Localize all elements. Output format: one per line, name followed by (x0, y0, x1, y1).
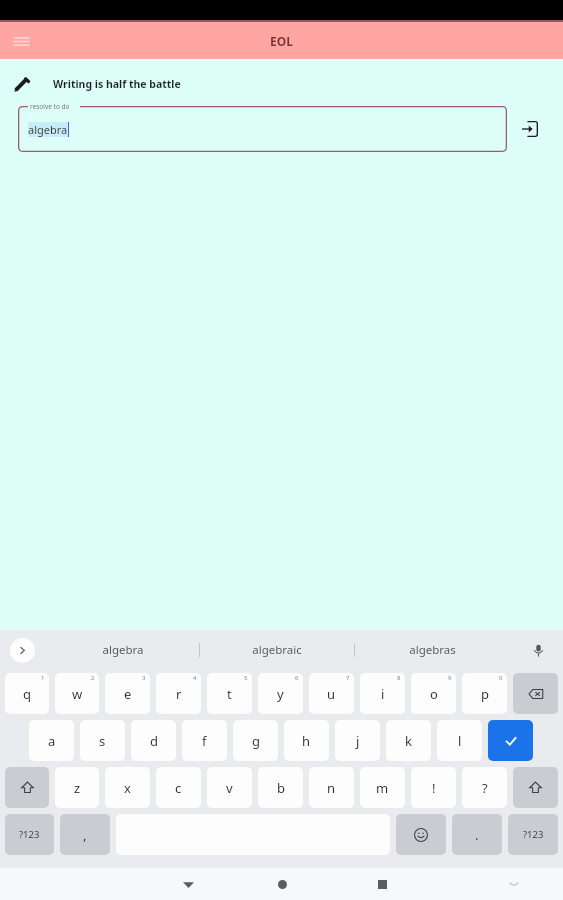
button[interactable]: i (360, 673, 405, 714)
button[interactable]: . (452, 814, 502, 855)
staticText: , (83, 826, 87, 844)
staticText: f (202, 732, 207, 750)
staticText: 7 (346, 674, 350, 682)
button[interactable]: Home (269, 871, 295, 897)
button[interactable]: Emoji (396, 814, 446, 855)
button[interactable]: Recent apps (369, 871, 395, 897)
button[interactable]: Shift (513, 767, 558, 808)
staticText: u (327, 685, 336, 703)
button[interactable]: u (309, 673, 354, 714)
staticText: 6 (295, 674, 299, 682)
button[interactable]: n (309, 767, 354, 808)
staticText: 2 (91, 674, 95, 682)
staticText: n (327, 779, 336, 797)
staticText: y (277, 685, 284, 703)
staticText: z (74, 779, 81, 797)
button[interactable]: w (55, 673, 99, 714)
staticText: ?123 (523, 828, 544, 841)
staticText: t (227, 685, 232, 703)
staticText: d (150, 732, 158, 750)
button[interactable]: d (131, 720, 176, 761)
staticText: g (252, 732, 260, 750)
button[interactable]: algebraic (200, 630, 354, 670)
button[interactable]: ?123 (508, 814, 558, 855)
button[interactable]: h (284, 720, 329, 761)
button[interactable]: ! (411, 767, 456, 808)
button[interactable]: q (5, 673, 49, 714)
button[interactable]: m (360, 767, 405, 808)
button[interactable]: z (55, 767, 99, 808)
button[interactable]: r (156, 673, 201, 714)
staticText: ! (432, 779, 436, 797)
button[interactable]: y (258, 673, 303, 714)
staticText: resolve to do (30, 102, 70, 111)
button[interactable]: ?123 (5, 814, 54, 855)
staticText: 4 (193, 674, 197, 682)
button[interactable]: Submit (515, 114, 545, 144)
staticText: o (430, 685, 438, 703)
staticText: . (475, 826, 479, 844)
staticText: b (277, 779, 285, 797)
staticText: EOL (270, 33, 293, 49)
staticText: algebra (28, 122, 68, 137)
button[interactable]: a (29, 720, 74, 761)
button[interactable]: j (335, 720, 380, 761)
staticText: v (226, 779, 233, 797)
button[interactable]: algebras (355, 630, 509, 670)
staticText: p (481, 685, 489, 703)
staticText: algebras (409, 642, 456, 658)
staticText: 9 (448, 674, 452, 682)
button[interactable]: Backspace (513, 673, 558, 714)
staticText: k (405, 732, 412, 750)
staticText: l (458, 732, 462, 750)
button[interactable]: Shift (5, 767, 49, 808)
button[interactable]: c (156, 767, 201, 808)
staticText: 0 (499, 674, 503, 682)
button[interactable]: Back (175, 871, 201, 897)
staticText: 3 (142, 674, 146, 682)
staticText: Writing is half the battle (53, 77, 181, 91)
staticText: m (376, 779, 389, 797)
button[interactable]: algebra (46, 630, 199, 670)
button[interactable]: o (411, 673, 456, 714)
staticText: r (176, 685, 182, 703)
staticText: 5 (244, 674, 248, 682)
staticText: w (72, 685, 83, 703)
staticText: a (48, 732, 56, 750)
staticText: s (99, 732, 106, 750)
staticText: j (356, 732, 360, 750)
button[interactable]: b (258, 767, 303, 808)
button[interactable]: v (207, 767, 252, 808)
button[interactable]: e (105, 673, 150, 714)
button[interactable]: resolve to do (18, 106, 507, 152)
staticText: e (124, 685, 132, 703)
staticText: q (23, 685, 31, 703)
button[interactable]: l (437, 720, 482, 761)
button[interactable]: Voice input (525, 637, 551, 663)
staticText: h (302, 732, 311, 750)
button[interactable]: , (60, 814, 110, 855)
staticText: ? (482, 779, 488, 797)
button[interactable]: Edit (10, 73, 32, 95)
staticText: algebraic (252, 642, 302, 658)
staticText: x (124, 779, 131, 797)
button[interactable]: ? (462, 767, 507, 808)
button[interactable]: f (182, 720, 227, 761)
button[interactable]: x (105, 767, 150, 808)
staticText: algebra (102, 642, 144, 658)
button[interactable]: More suggestions (10, 638, 35, 663)
staticText: ?123 (19, 828, 40, 841)
staticText: 1 (41, 674, 45, 682)
button[interactable]: Switch keyboard (503, 873, 525, 895)
staticText: 8 (397, 674, 401, 682)
button[interactable]: p (462, 673, 507, 714)
button[interactable]: k (386, 720, 431, 761)
button[interactable]: Enter (488, 720, 533, 761)
button[interactable]: s (80, 720, 125, 761)
staticText: c (175, 779, 182, 797)
button[interactable]: Open navigation menu (6, 26, 36, 56)
staticText: i (381, 685, 385, 703)
button[interactable]: g (233, 720, 278, 761)
button[interactable]: t (207, 673, 252, 714)
